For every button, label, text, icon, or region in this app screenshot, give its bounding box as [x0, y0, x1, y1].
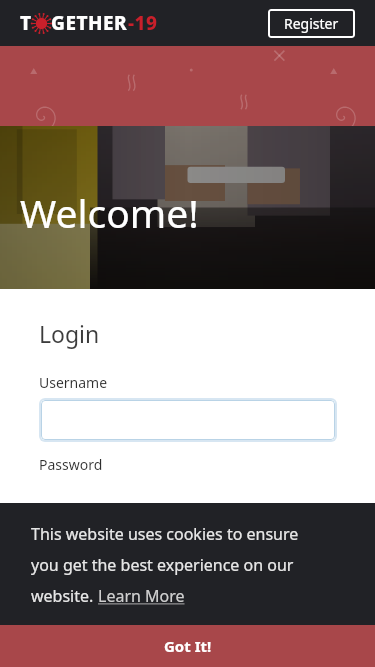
staticText: you get the best experience on our [31, 554, 294, 576]
staticText: This website uses cookies to ensure [31, 523, 299, 545]
staticText: Login [39, 318, 100, 349]
staticText: Password [39, 455, 103, 474]
staticText: Username [39, 373, 108, 392]
button[interactable]: Learn More [98, 585, 185, 607]
button[interactable]: Got It! [0, 625, 375, 667]
staticText: Got It! [164, 636, 212, 656]
staticText: T [20, 10, 32, 36]
staticText: Learn More [98, 585, 185, 607]
staticText: -19 [128, 10, 158, 36]
staticText: Welcome! [20, 186, 199, 239]
staticText: website. [31, 585, 98, 607]
staticText: GETHER [51, 10, 128, 36]
staticText: Register [284, 14, 339, 33]
button[interactable] [41, 400, 335, 440]
button[interactable]: Register [268, 9, 355, 38]
button[interactable]: T [20, 10, 158, 36]
